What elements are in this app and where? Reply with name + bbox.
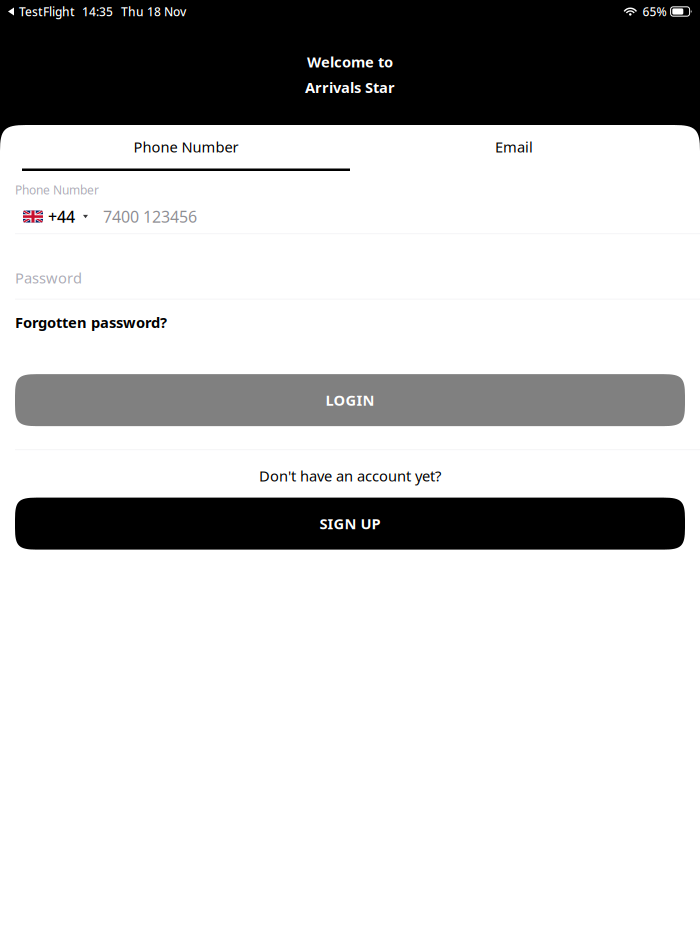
button[interactable]: SIGN UP [15, 498, 685, 550]
staticText: Welcome to [307, 52, 393, 71]
button[interactable]: Forgotten password? [15, 300, 167, 346]
staticText: 14:35 [82, 3, 113, 19]
staticText: TestFlight [19, 3, 75, 19]
staticText: Forgotten password? [15, 313, 167, 332]
staticText: SIGN UP [319, 514, 380, 533]
staticText: Password [15, 268, 82, 288]
button[interactable]: Phone Number [15, 125, 350, 171]
staticText: +44 [48, 206, 75, 227]
button[interactable]: Country code, United Kingdom +44 [15, 206, 88, 227]
staticText: LOGIN [325, 390, 374, 410]
button[interactable]: Email [350, 125, 685, 171]
button[interactable]: LOGIN [15, 374, 685, 426]
staticText: Thu 18 Nov [121, 3, 186, 19]
staticText: Don't have an account yet? [259, 466, 441, 486]
staticText: 7400 123456 [103, 206, 197, 227]
staticText: Email [495, 137, 533, 156]
staticText: Phone Number [15, 182, 99, 198]
staticText: 65% [643, 3, 667, 19]
staticText: Phone Number [133, 137, 238, 156]
staticText: Arrivals Star [305, 77, 395, 97]
